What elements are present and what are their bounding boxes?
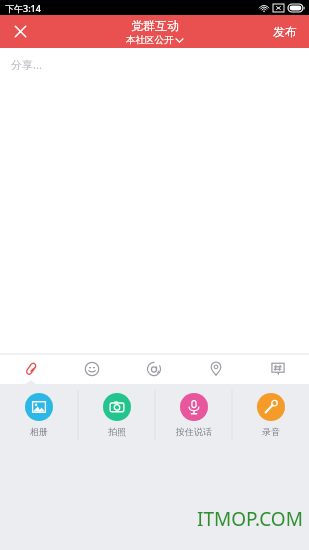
button[interactable]: 拍照 — [78, 384, 155, 446]
button[interactable]: 表情 — [61, 354, 123, 384]
button[interactable]: 关闭 — [0, 15, 40, 48]
button[interactable]: 附件 — [0, 354, 61, 384]
staticText: ITMOP.COM — [197, 506, 303, 532]
button[interactable]: 党群互动 — [126, 18, 183, 46]
staticText: 党群互动 — [131, 18, 179, 33]
button[interactable]: 发布 — [261, 15, 309, 48]
button[interactable]: 提醒谁看 — [123, 354, 185, 384]
staticText: 本社区公开 — [126, 34, 174, 46]
button[interactable]: 录音 — [232, 384, 309, 446]
staticText: 录音 — [262, 426, 280, 437]
button[interactable]: 相册 — [0, 384, 78, 446]
staticText: 分享... — [11, 57, 42, 72]
staticText: 拍照 — [108, 426, 126, 437]
button[interactable]: 话题 — [247, 354, 309, 384]
staticText: 发布 — [273, 24, 297, 39]
staticText: 相册 — [30, 426, 48, 437]
staticText: 下午3:14 — [5, 2, 41, 14]
staticText: 按住说话 — [176, 426, 212, 437]
button[interactable]: 位置 — [185, 354, 247, 384]
button[interactable]: 按住说话 — [155, 384, 232, 446]
